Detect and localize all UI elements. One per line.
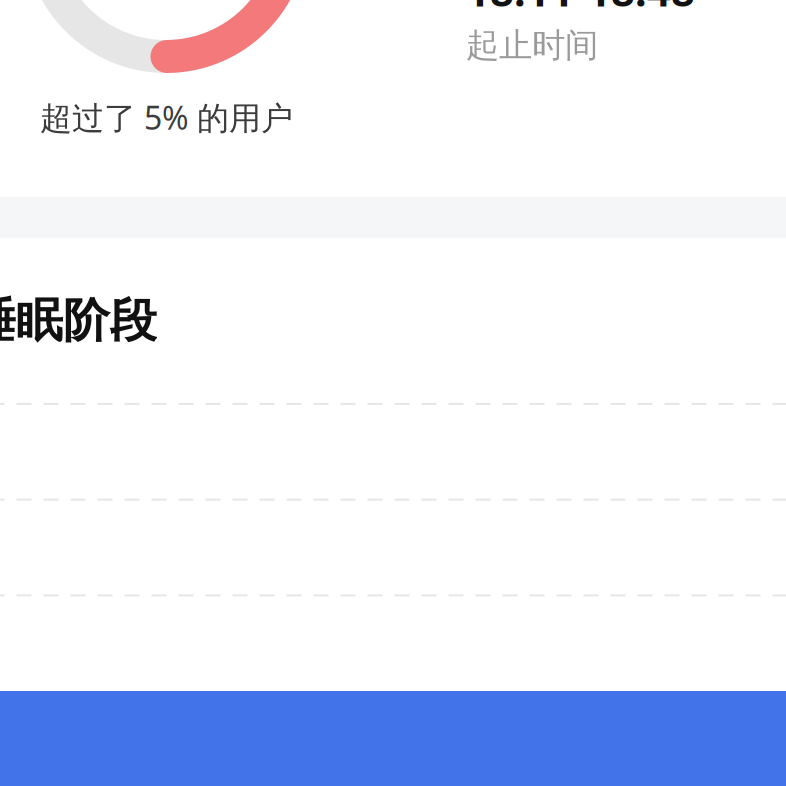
staticText: 18:11-18:48 (466, 0, 695, 18)
button[interactable]: 18:11-18:48 (0, 0, 786, 786)
staticText: 起止时间 (466, 25, 598, 66)
button[interactable]: 超过了 5% 的用户 (0, 0, 786, 786)
staticText: 睡眠阶段 (0, 292, 157, 349)
staticText: 超过了 5% 的用户 (40, 96, 293, 138)
